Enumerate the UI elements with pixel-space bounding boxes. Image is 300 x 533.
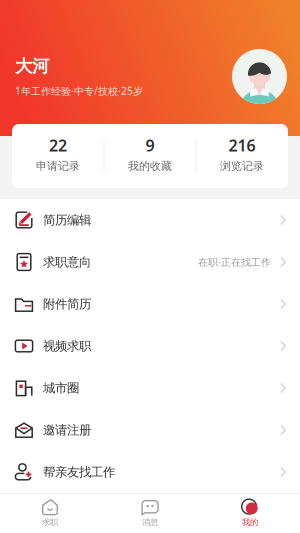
button[interactable]: 附件简历 [0,283,300,325]
staticText: 帮亲友找工作 [43,464,115,480]
staticText: 在职·正在找工作 [198,255,271,269]
staticText: 我的 [242,517,258,527]
button[interactable]: 帮亲友找工作 [0,451,300,493]
button[interactable]: 求职意向 [0,241,300,283]
button[interactable]: 9 [104,124,195,187]
button[interactable]: 216 [196,124,287,187]
staticText: 216 [228,134,255,156]
button[interactable]: 邀请注册 [0,409,300,451]
staticText: 消息 [142,517,158,527]
staticText: 浏览记录 [220,159,264,173]
staticText: 简历编辑 [43,212,91,228]
button[interactable]: 求职 [0,494,100,533]
button[interactable]: 视频求职 [0,325,300,367]
staticText: 9 [145,134,154,156]
staticText: 大河 [15,55,49,77]
staticText: 22 [49,134,67,156]
staticText: 求职 [42,517,58,527]
button[interactable]: 简历编辑 [0,199,300,241]
button[interactable]: 城市圈 [0,367,300,409]
staticText: 求职意向 [43,254,91,270]
staticText: 我的收藏 [128,159,172,173]
staticText: 申请记录 [36,159,80,173]
staticText: 1年工作经验·中专/技校·25岁 [15,84,143,98]
staticText: 邀请注册 [43,422,91,438]
staticText: 附件简历 [43,296,91,312]
button[interactable]: 我的 [200,494,300,533]
button[interactable]: 消息 [100,494,200,533]
button[interactable]: 22 [12,124,103,187]
staticText: 视频求职 [43,338,91,354]
staticText: 城市圈 [43,380,79,396]
